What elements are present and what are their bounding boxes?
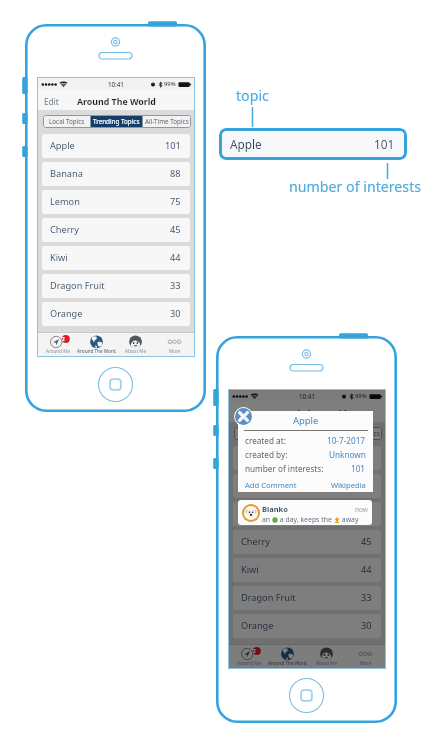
button[interactable]: More [155,332,194,356]
staticText: 30 [361,619,372,632]
staticText: Dragon Fruit [241,591,296,604]
staticText: Banana [241,479,274,492]
staticText: Around The World [268,660,307,666]
staticText: 101 [356,451,372,464]
staticText: Dragon Fruit [50,279,105,292]
staticText: 33 [170,279,181,292]
staticText: 44 [361,563,372,576]
staticText: Orange [241,619,274,632]
button[interactable]: Close [235,408,252,425]
button[interactable]: Apple [42,134,190,158]
staticText: 2 [253,648,256,654]
staticText: Blanko [262,504,288,514]
staticText: a day, keeps the [278,515,334,524]
staticText: 88 [361,479,372,492]
staticText: 33 [361,591,372,604]
button[interactable]: More [346,644,385,668]
staticText: Apple [50,139,75,152]
staticText: created at: [245,435,286,446]
button[interactable]: Blanko [238,500,372,525]
button[interactable]: Around The World [268,644,307,668]
staticText: Around Me [237,660,261,666]
button[interactable]: Edit [233,408,252,419]
staticText: Unknown [329,449,366,460]
button[interactable]: Apple [233,446,381,470]
staticText: All-Time Topics [336,429,380,438]
staticText: About Me [125,348,146,354]
staticText: 101 [374,136,395,152]
button[interactable]: Dragon Fruit [233,586,381,610]
staticText: Kiwi [50,251,68,264]
staticText: All-Time Topics [145,117,189,126]
button[interactable]: All-Time Topics [143,115,191,128]
staticText: Cherry [50,223,79,236]
staticText: 10:41 [108,80,124,88]
button[interactable]: All-Time Topics [334,427,382,440]
button[interactable]: Local Topics [43,115,90,128]
button[interactable]: Orange [233,614,381,638]
button[interactable]: Lemon [233,502,381,526]
staticText: an [262,515,272,524]
staticText: 75 [361,507,372,520]
button[interactable]: Wikipedia [331,480,366,490]
staticText: away [340,515,359,524]
staticText: Lemon [241,507,271,520]
button[interactable]: Trending Topics [282,427,333,440]
staticText: topic [236,86,269,105]
staticText: 30 [170,307,181,320]
button[interactable]: Around The World [77,332,116,356]
button[interactable]: Cherry [233,530,381,554]
staticText: 99% [355,392,367,400]
staticText: Around The World [77,348,116,354]
button[interactable]: Local Topics [234,427,281,440]
button[interactable]: Banana [42,162,190,186]
staticText: 101 [165,139,181,152]
staticText: Apple [293,414,319,427]
staticText: Around Me [46,348,70,354]
staticText: Banana [50,167,83,180]
staticText: Around The World [268,408,347,420]
staticText: 45 [361,535,372,548]
staticText: Local Topics [240,429,276,438]
button[interactable]: Kiwi [233,558,381,582]
staticText: number of interests [289,177,422,196]
staticText: Cherry [241,535,270,548]
button[interactable]: Cherry [42,218,190,242]
button[interactable]: Edit [42,96,61,107]
staticText: created by: [245,449,288,460]
button[interactable]: Around Me [38,332,77,356]
staticText: Local Topics [49,117,85,126]
staticText: 99% [164,80,176,88]
button[interactable]: Around Me [229,644,268,668]
button[interactable]: Add Comment [245,480,297,490]
staticText: 45 [170,223,181,236]
staticText: 10-7-2017 [327,435,366,446]
staticText: 75 [170,195,181,208]
staticText: 44 [170,251,181,264]
staticText: 2 [62,336,65,342]
staticText: now [355,505,368,514]
staticText: Apple [241,451,266,464]
staticText: number of interests: [245,463,324,474]
staticText: Lemon [50,195,80,208]
staticText: More [169,348,181,354]
button[interactable]: Banana [233,474,381,498]
staticText: More [360,660,372,666]
button[interactable]: About Me [307,644,346,668]
button[interactable]: Apple [219,128,407,160]
staticText: Around The World [77,96,156,108]
staticText: Trending Topics [284,429,331,438]
button[interactable]: Dragon Fruit [42,274,190,298]
staticText: 101 [351,463,366,474]
staticText: Orange [50,307,83,320]
staticText: Kiwi [241,563,259,576]
staticText: Trending Topics [93,117,140,126]
button[interactable]: About Me [116,332,155,356]
button[interactable]: Trending Topics [91,115,142,128]
button[interactable]: Kiwi [42,246,190,270]
staticText: 88 [170,167,181,180]
button[interactable]: Lemon [42,190,190,214]
staticText: 10:41 [299,392,315,400]
staticText: Apple [230,136,262,152]
button[interactable]: Orange [42,302,190,326]
